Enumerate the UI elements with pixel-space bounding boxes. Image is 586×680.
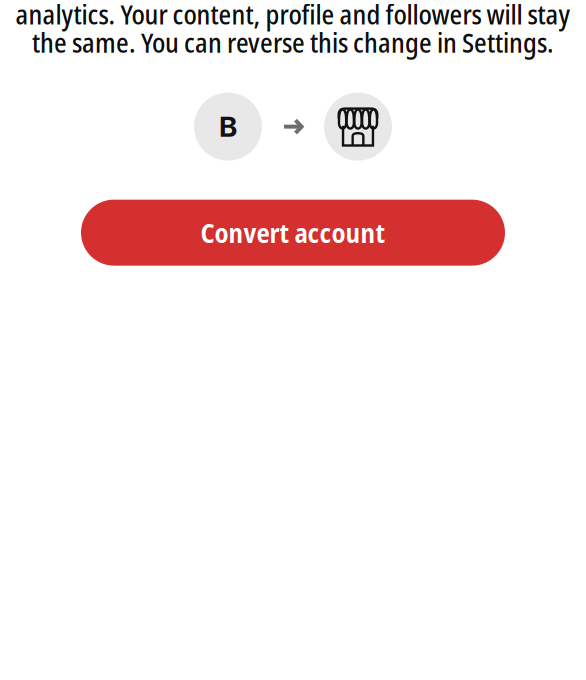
staticText: B (219, 110, 237, 144)
button[interactable]: Convert account (81, 200, 505, 266)
staticText: Convert account (200, 214, 385, 251)
staticText: the same. You can reverse this change in… (32, 24, 554, 61)
staticText: analytics. Your content, profile and fol… (15, 0, 570, 32)
